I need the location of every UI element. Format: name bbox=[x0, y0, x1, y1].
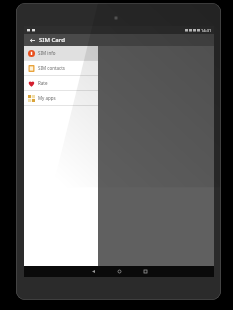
button[interactable]: Recents bbox=[132, 266, 158, 277]
staticText: 14:31 bbox=[201, 28, 212, 33]
button[interactable]: Home bbox=[106, 266, 132, 277]
staticText: SIM info bbox=[38, 50, 56, 56]
staticText: SIM Card bbox=[39, 36, 65, 44]
button[interactable]: SIM info bbox=[24, 46, 98, 60]
button[interactable]: My apps bbox=[24, 91, 98, 105]
button[interactable]: Back bbox=[28, 36, 37, 45]
staticText: My apps bbox=[38, 95, 56, 101]
staticText: Rate bbox=[38, 80, 48, 86]
button[interactable]: SIM contacts bbox=[24, 61, 98, 75]
button[interactable]: Back bbox=[80, 266, 106, 277]
staticText: SIM contacts bbox=[38, 65, 65, 71]
button[interactable]: Rate bbox=[24, 76, 98, 90]
